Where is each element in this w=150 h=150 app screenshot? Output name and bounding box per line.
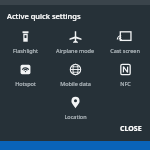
other: Location <box>69 96 82 109</box>
other: Mobile data <box>69 63 82 76</box>
staticText: NFC <box>120 80 131 87</box>
staticText: Flashlight <box>13 47 38 54</box>
staticText: CLOSE <box>120 124 142 134</box>
button[interactable]: Cast screen <box>100 29 150 55</box>
button[interactable]: Location <box>50 95 100 121</box>
button[interactable]: Airplane mode <box>50 29 100 55</box>
staticText: Active quick settings <box>7 11 81 21</box>
staticText: Hotspot <box>15 80 36 87</box>
button[interactable]: Hotspot <box>0 62 50 88</box>
other: Cast screen <box>119 30 132 43</box>
staticText: Airplane mode <box>56 47 94 54</box>
button[interactable]: NFC <box>100 62 150 88</box>
staticText: Mobile data <box>60 80 91 87</box>
other: Flashlight <box>19 30 32 43</box>
other: NFC <box>119 63 132 76</box>
staticText: Cast screen <box>110 47 140 54</box>
staticText: Location <box>64 113 87 120</box>
button[interactable]: CLOSE <box>112 121 150 137</box>
other: Hotspot <box>19 63 32 76</box>
button[interactable]: Mobile data <box>50 62 100 88</box>
button[interactable]: Flashlight <box>0 29 50 55</box>
other: Airplane mode <box>69 30 82 43</box>
